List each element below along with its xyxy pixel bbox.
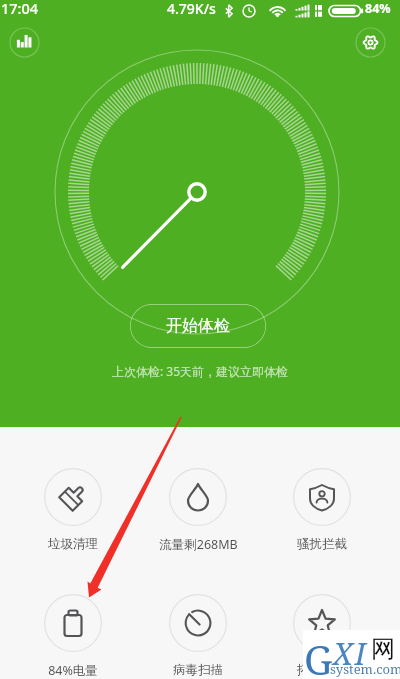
staticText: 开始体检	[166, 316, 230, 336]
staticText: 骚扰拦截	[297, 536, 347, 552]
staticText: G	[304, 632, 333, 679]
button[interactable]: Statistics	[4, 22, 45, 63]
staticText: 84%	[365, 0, 391, 17]
staticText: 上次体检: 35天前，建议立即体检	[112, 363, 289, 379]
staticText: 4.79K/s	[167, 0, 216, 18]
staticText: 拓展工具	[297, 662, 347, 678]
staticText: system.com	[330, 660, 400, 678]
staticText: 网	[371, 634, 395, 664]
button[interactable]: 拓展工具	[264, 594, 380, 679]
staticText: 流量剩268MB	[159, 536, 238, 553]
staticText: 17:04	[1, 0, 39, 18]
staticText: XI	[333, 633, 368, 674]
button[interactable]: 病毒扫描	[140, 594, 256, 679]
staticText: 垃圾清理	[48, 536, 98, 552]
staticText: 病毒扫描	[173, 662, 223, 678]
button[interactable]: 流量剩268MB	[140, 468, 256, 556]
button[interactable]: 开始体检	[130, 304, 266, 348]
button[interactable]: Settings	[350, 22, 391, 63]
button[interactable]: 84%电量	[15, 594, 131, 679]
staticText: 84%电量	[48, 662, 98, 679]
button[interactable]: 骚扰拦截	[264, 468, 380, 556]
button[interactable]: 垃圾清理	[15, 468, 131, 556]
